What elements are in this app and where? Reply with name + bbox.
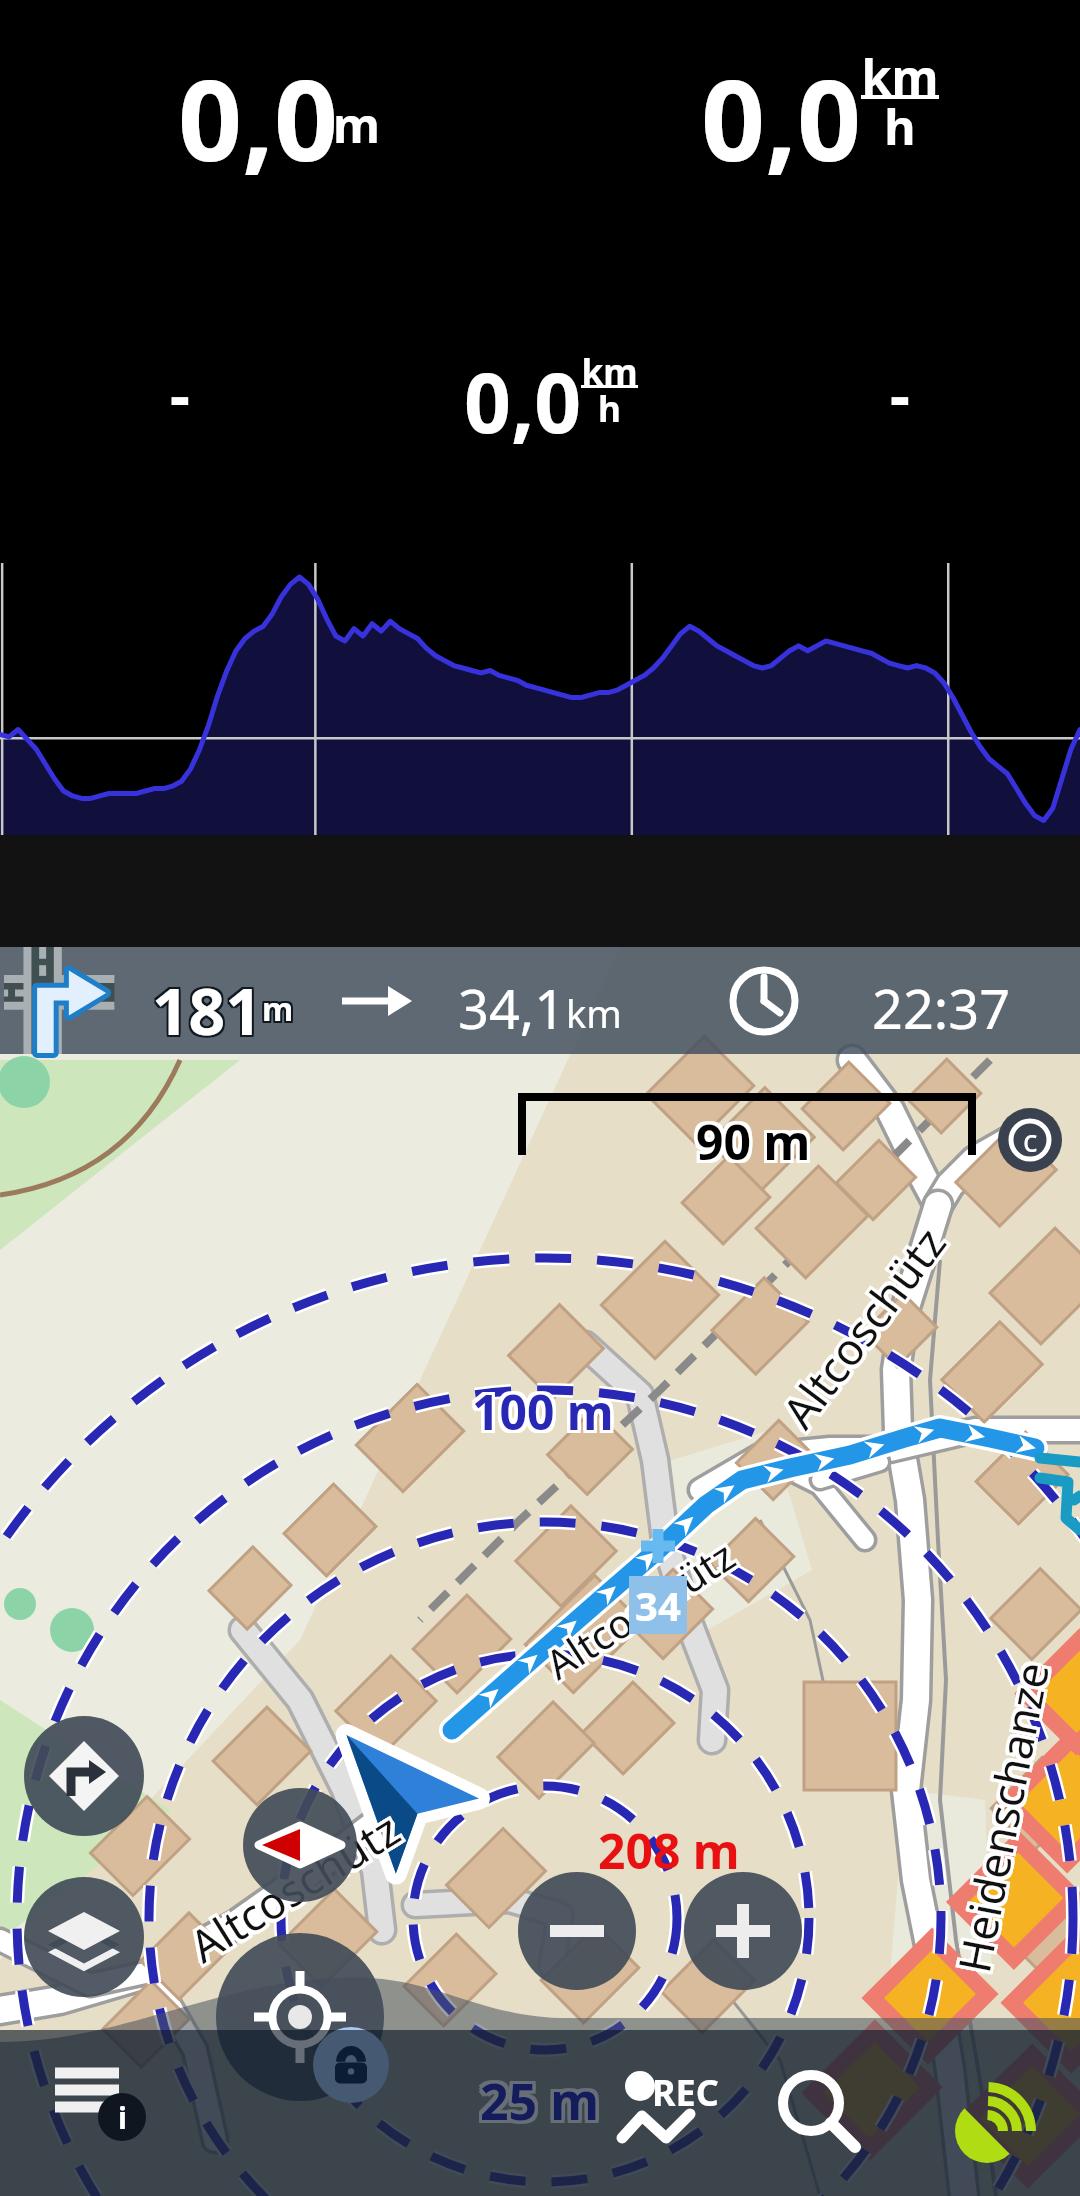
staticText: Altcoschütz: [771, 1216, 961, 1441]
staticText: 0,0: [464, 345, 582, 457]
staticText: Altcoschütz: [181, 1797, 413, 1974]
staticText: 100 m: [475, 1382, 617, 1447]
staticText: 181: [150, 967, 260, 1054]
staticText: 90 m: [699, 1106, 814, 1171]
staticText: Altcoschütz: [535, 1528, 744, 1690]
staticText: m: [333, 92, 380, 158]
staticText: Heidenschanze: [946, 1654, 1065, 1975]
staticText: Altcoschütz: [174, 1798, 407, 1974]
staticText: 90 m: [696, 1112, 811, 1177]
staticText: Altcoschütz: [532, 1529, 742, 1692]
staticText: 181: [154, 967, 264, 1054]
staticText: 25 m: [477, 2067, 596, 2135]
staticText: 90 m: [696, 1109, 811, 1174]
staticText: Altcoschütz: [533, 1525, 743, 1688]
staticText: 0,0: [701, 41, 862, 194]
staticText: Heidenschanze: [942, 1660, 1061, 1980]
staticText: 25 m: [477, 2064, 596, 2132]
staticText: -: [890, 352, 910, 436]
staticText: 25 m: [480, 2067, 599, 2135]
staticText: 181: [150, 969, 260, 1056]
staticText: m: [264, 987, 296, 1031]
staticText: Heidenschanze: [939, 1659, 1058, 1980]
staticText: Altcoschütz: [766, 1212, 956, 1438]
staticText: 34: [635, 1578, 681, 1632]
staticText: 181: [152, 967, 262, 1054]
staticText: 100 m: [469, 1379, 611, 1444]
staticText: 181: [154, 965, 264, 1052]
button[interactable]: Map layers: [24, 1877, 144, 1997]
staticText: 90 m: [693, 1109, 808, 1174]
staticText: 208 m: [598, 1818, 740, 1883]
staticText: Altcoschütz: [177, 1803, 410, 1979]
staticText: Altcoschütz: [769, 1218, 959, 1444]
staticText: m: [262, 985, 294, 1029]
staticText: 181: [150, 965, 260, 1052]
staticText: m: [262, 987, 294, 1031]
staticText: Altcoschütz: [180, 1801, 412, 1978]
staticText: 100 m: [472, 1382, 614, 1447]
staticText: 100 m: [469, 1382, 611, 1447]
staticText: Altcoschütz: [536, 1530, 746, 1693]
staticText: 100 m: [475, 1376, 617, 1441]
button[interactable]: GPS status: [940, 2056, 1060, 2176]
staticText: -: [170, 352, 190, 436]
button[interactable]: Lock screen: [313, 2027, 389, 2103]
staticText: h: [581, 384, 638, 432]
staticText: Heidenschanze: [946, 1657, 1065, 1978]
staticText: Altcoschütz: [766, 1217, 957, 1442]
staticText: 90 m: [699, 1112, 814, 1177]
staticText: 90 m: [696, 1106, 811, 1171]
staticText: Altcoschütz: [176, 1796, 409, 1973]
staticText: h: [861, 94, 939, 160]
staticText: Altcoschütz: [772, 1214, 963, 1439]
staticText: Heidenschanze: [943, 1657, 1062, 1977]
staticText: Altcoschütz: [764, 1215, 954, 1440]
staticText: Altcoschütz: [770, 1212, 960, 1437]
button[interactable]: Zoom out: [518, 1872, 636, 1990]
staticText: Altcoschütz: [178, 1799, 411, 1975]
button[interactable]: Record track: [600, 2042, 730, 2162]
staticText: Altcoschütz: [179, 1795, 412, 1971]
staticText: 25 m: [483, 2064, 602, 2132]
staticText: 181: [154, 969, 264, 1056]
staticText: 34,1: [458, 971, 566, 1045]
staticText: 0,0: [178, 41, 339, 194]
staticText: 100 m: [472, 1376, 614, 1441]
staticText: Heidenschanze: [945, 1660, 1064, 1981]
button[interactable]: Copyright: [998, 1108, 1062, 1172]
staticText: km: [861, 44, 939, 110]
staticText: Altcoschütz: [182, 1800, 415, 1976]
staticText: Altcoschütz: [539, 1529, 748, 1691]
staticText: Heidenschanze: [941, 1653, 1060, 1974]
staticText: 100 m: [475, 1379, 617, 1444]
staticText: Altcoschütz: [768, 1214, 959, 1440]
staticText: m: [264, 985, 296, 1029]
button[interactable]: Zoom in: [684, 1872, 802, 1990]
button[interactable]: My location: [216, 1933, 384, 2101]
staticText: Altcoschütz: [768, 1210, 958, 1435]
staticText: km: [581, 347, 638, 395]
staticText: Altcoschütz: [537, 1526, 747, 1689]
staticText: 100 m: [469, 1376, 611, 1441]
staticText: m: [260, 987, 292, 1031]
button[interactable]: Compass: [243, 1788, 357, 1902]
staticText: 25 m: [483, 2067, 602, 2135]
button[interactable]: Route direction: [24, 1716, 144, 1836]
staticText: m: [264, 989, 296, 1033]
staticText: m: [260, 985, 292, 1029]
staticText: m: [262, 989, 294, 1033]
staticText: m: [260, 989, 292, 1033]
staticText: Heidenschanze: [944, 1654, 1063, 1974]
staticText: Altcoschütz: [176, 1800, 408, 1977]
staticText: Heidenschanze: [940, 1656, 1059, 1977]
button[interactable]: Search: [766, 2060, 876, 2170]
staticText: REC: [652, 2068, 719, 2117]
staticText: i: [118, 2097, 127, 2138]
button[interactable]: Route 34: [629, 1576, 687, 1634]
staticText: 181: [152, 965, 262, 1052]
staticText: 90 m: [693, 1112, 808, 1177]
staticText: 25 m: [477, 2070, 596, 2138]
button[interactable]: Menu: [34, 2042, 164, 2162]
button[interactable]: Navigation info: [0, 947, 1080, 1054]
